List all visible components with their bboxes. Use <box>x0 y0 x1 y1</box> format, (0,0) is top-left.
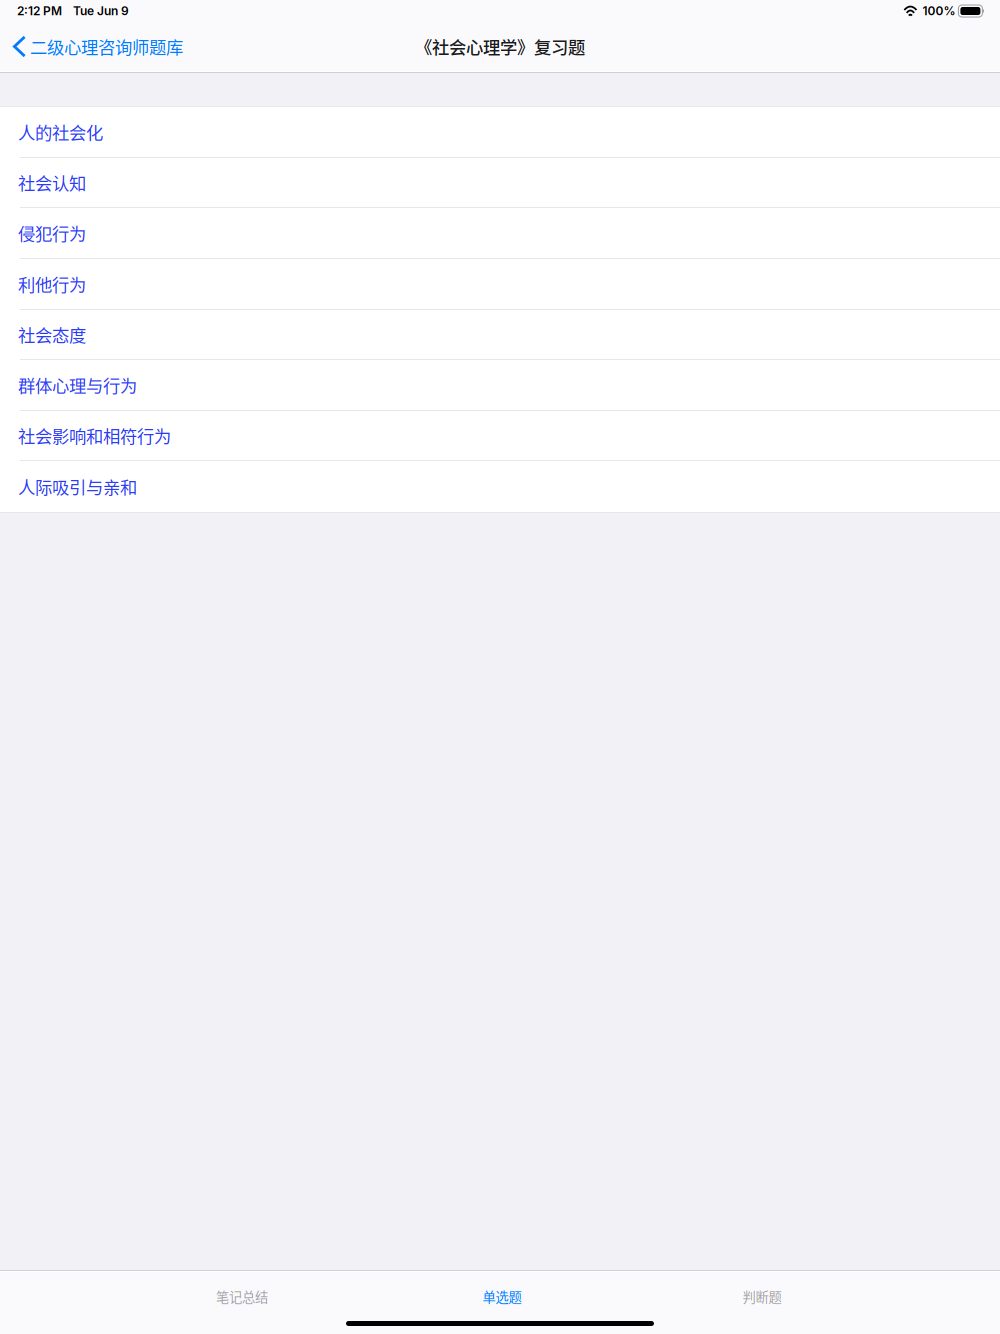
button[interactable]: 侵犯行为 <box>0 208 1000 259</box>
staticText: 社会态度 <box>18 322 86 347</box>
staticText: 单选题 <box>482 1287 521 1306</box>
staticText: 群体心理与行为 <box>18 372 137 398</box>
staticText: 《社会心理学》复习题 <box>415 34 585 59</box>
staticText: 判断题 <box>742 1287 781 1306</box>
button[interactable]: 社会态度 <box>0 310 1000 360</box>
staticText: 利他行为 <box>18 271 86 297</box>
button[interactable]: 单选题 <box>372 1272 632 1321</box>
staticText: 人的社会化 <box>18 119 103 145</box>
staticText: 社会认知 <box>18 170 86 195</box>
button[interactable]: 利他行为 <box>0 259 1000 310</box>
button[interactable]: 人的社会化 <box>0 107 1000 158</box>
staticText: 人际吸引与亲和 <box>18 474 137 499</box>
staticText: 社会影响和相符行为 <box>18 423 171 448</box>
staticText: 侵犯行为 <box>18 220 86 246</box>
staticText: 笔记总结 <box>216 1287 268 1306</box>
staticText: 二级心理咨询师题库 <box>30 34 183 59</box>
button[interactable]: 判断题 <box>632 1272 892 1321</box>
button[interactable]: 笔记总结 <box>112 1272 372 1321</box>
staticText: Tue Jun 9 <box>73 4 129 18</box>
staticText: 2:12 PM <box>17 4 62 18</box>
button[interactable]: 群体心理与行为 <box>0 360 1000 411</box>
button[interactable]: 人际吸引与亲和 <box>0 461 1000 512</box>
staticText: 100% <box>922 4 955 18</box>
button[interactable]: 社会影响和相符行为 <box>0 411 1000 461</box>
button[interactable]: 返回 二级心理咨询师题库 <box>0 26 193 66</box>
button[interactable]: 社会认知 <box>0 158 1000 208</box>
